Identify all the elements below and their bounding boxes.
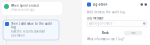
staticText: When Sprint ended xyxy=(11,4,39,7)
staticText: track the records standard xyxy=(11,30,45,33)
staticText: Log action xyxy=(92,3,107,6)
staticText: Next xyxy=(130,31,135,35)
staticText: a few seconds ago xyxy=(11,8,35,11)
staticText: Then I add value to the audit log xyxy=(11,22,52,29)
staticText: Back xyxy=(102,31,109,35)
staticText: system generated xyxy=(88,22,112,25)
staticText: What information can I log? xyxy=(87,37,124,41)
staticText: Add items to the audit log. xyxy=(87,10,126,14)
staticText: operation xyxy=(11,34,25,37)
staticText: Log message xyxy=(87,16,104,20)
